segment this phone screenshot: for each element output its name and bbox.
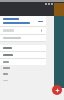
button[interactable]: Side panel [54,16,64,88]
button[interactable] [0,16,46,26]
button[interactable] [0,35,46,41]
button[interactable]: Add [52,85,62,95]
button[interactable] [0,65,46,71]
button[interactable] [0,59,46,65]
button[interactable] [0,45,46,51]
other: More options [40,29,43,32]
button[interactable]: More options [0,27,46,34]
button[interactable] [0,52,46,58]
button[interactable] [0,77,46,83]
button[interactable] [0,71,46,77]
